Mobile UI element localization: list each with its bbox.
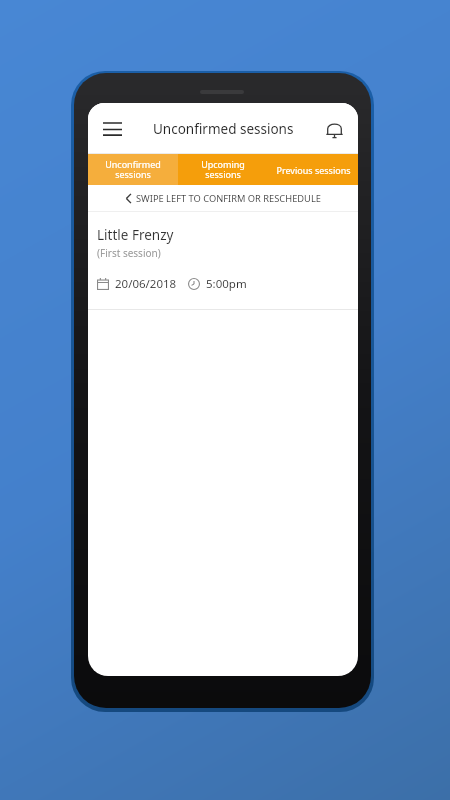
staticText: 20/06/2018 [115, 276, 177, 292]
staticText: 5:00pm [206, 276, 247, 292]
button[interactable]: Open navigation menu [92, 109, 132, 149]
staticText: Unconfirmed sessions [153, 120, 294, 138]
staticText: Previous sessions [276, 164, 351, 176]
staticText: Unconfirmed sessions [105, 158, 161, 181]
staticText: (First session) [97, 246, 161, 260]
staticText: Upcoming sessions [201, 158, 245, 181]
button[interactable]: Previous sessions [268, 154, 358, 185]
staticText: Little Frenzy [97, 226, 174, 244]
staticText: SWIPE LEFT TO CONFIRM OR RESCHEDULE [136, 192, 321, 205]
button[interactable]: Notifications [316, 111, 352, 147]
button[interactable]: Little Frenzy [88, 212, 358, 310]
button[interactable]: Upcoming sessions [178, 154, 268, 185]
button[interactable]: Unconfirmed sessions [88, 154, 178, 185]
